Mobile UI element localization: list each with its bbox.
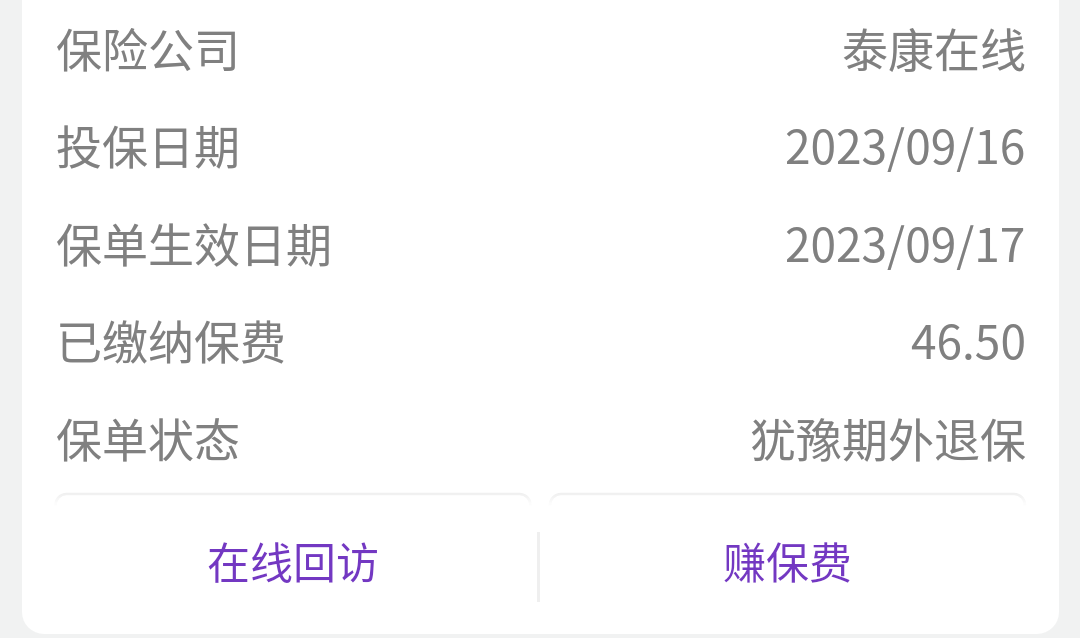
staticText: 46.50	[911, 306, 1026, 373]
staticText: 赚保费	[723, 529, 852, 591]
button[interactable]: 保单状态	[22, 388, 1059, 486]
staticText: 2023/09/17	[785, 209, 1026, 276]
staticText: 保险公司	[56, 14, 240, 81]
staticText: 犹豫期外退保	[750, 404, 1026, 471]
button[interactable]: 已缴纳保费	[22, 290, 1059, 388]
button[interactable]: 在线回访	[55, 493, 530, 627]
staticText: 保单生效日期	[56, 209, 332, 276]
staticText: 2023/09/16	[785, 111, 1026, 178]
button[interactable]: 保单生效日期	[22, 193, 1059, 291]
button[interactable]: 保险公司	[22, 0, 1059, 96]
button[interactable]: 赚保费	[550, 493, 1025, 627]
staticText: 投保日期	[56, 111, 240, 178]
staticText: 已缴纳保费	[56, 306, 286, 373]
staticText: 泰康在线	[842, 14, 1026, 81]
button[interactable]: 投保日期	[22, 95, 1059, 193]
staticText: 在线回访	[207, 529, 379, 591]
staticText: 保单状态	[56, 404, 240, 471]
